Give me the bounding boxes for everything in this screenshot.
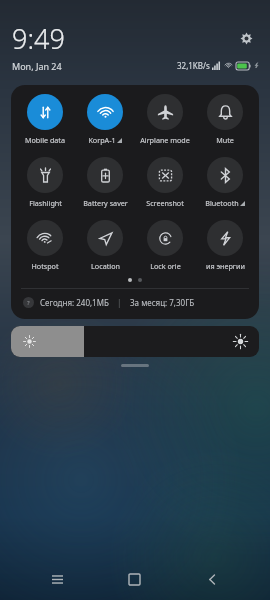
staticText: ия энергии — [206, 261, 245, 271]
button[interactable]: Settings — [234, 26, 258, 50]
staticText: ? — [27, 299, 30, 307]
button[interactable]: Battery saver — [75, 155, 135, 208]
button[interactable]: Bluetooth — [195, 155, 255, 208]
button[interactable]: Lock orie — [135, 218, 195, 271]
staticText: KorpA-1 — [88, 135, 116, 145]
button[interactable]: Hotspot — [15, 218, 75, 271]
staticText: Screenshot — [146, 198, 184, 208]
button[interactable]: Recents — [37, 559, 77, 599]
staticText: Mobile data — [25, 135, 65, 145]
staticText: Mute — [216, 135, 234, 145]
staticText: 32,1KB/s — [177, 60, 210, 71]
button[interactable]: Home — [114, 559, 154, 599]
button[interactable]: ? — [11, 289, 259, 315]
staticText: Airplane mode — [140, 135, 190, 145]
button[interactable]: Mobile data — [15, 92, 75, 145]
button[interactable]: Brightness — [11, 326, 259, 357]
staticText: Battery saver — [83, 198, 128, 208]
button[interactable]: Back — [192, 559, 232, 599]
staticText: Flashlight — [29, 198, 62, 208]
staticText: Hotspot — [31, 261, 59, 271]
staticText: Bluetooth — [205, 198, 239, 208]
button[interactable]: Screenshot — [135, 155, 195, 208]
button[interactable]: KorpA-1 — [75, 92, 135, 145]
button[interactable]: Mute — [195, 92, 255, 145]
button[interactable]: Flashlight — [15, 155, 75, 208]
staticText: Location — [91, 261, 120, 271]
staticText: Lock orie — [150, 261, 181, 271]
button[interactable]: Location — [75, 218, 135, 271]
button[interactable]: Airplane mode — [135, 92, 195, 145]
staticText: 9:49 — [12, 20, 65, 57]
staticText: Сегодня: 240,1МБ — [40, 297, 109, 308]
staticText: | — [117, 297, 122, 308]
button[interactable]: ия энергии — [195, 218, 255, 271]
staticText: Mon, Jan 24 — [12, 60, 62, 72]
staticText: За месяц: 7,30ГБ — [130, 297, 195, 308]
